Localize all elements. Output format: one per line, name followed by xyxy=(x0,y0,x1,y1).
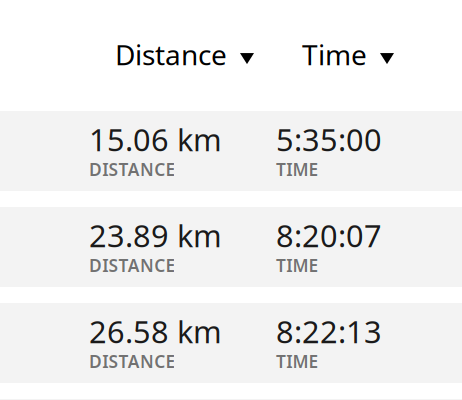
staticText: DISTANCE xyxy=(89,254,175,277)
staticText: Distance xyxy=(115,36,227,73)
button[interactable]: 26.58 km xyxy=(0,303,462,383)
staticText: TIME xyxy=(276,254,319,277)
button[interactable]: 15.06 km xyxy=(0,111,462,191)
staticText: DISTANCE xyxy=(89,158,175,181)
staticText: 8:22:13 xyxy=(276,311,382,352)
staticText: Time xyxy=(302,36,367,73)
button[interactable]: 23.89 km xyxy=(0,207,462,287)
staticText: TIME xyxy=(276,158,319,181)
staticText: 5:35:00 xyxy=(276,119,382,160)
staticText: 15.06 km xyxy=(89,119,222,160)
button[interactable]: Distance xyxy=(115,36,254,73)
button[interactable]: Time xyxy=(302,36,394,73)
staticText: 23.89 km xyxy=(89,215,222,256)
staticText: TIME xyxy=(276,350,319,373)
staticText: DISTANCE xyxy=(89,350,175,373)
staticText: 26.58 km xyxy=(89,311,222,352)
staticText: 8:20:07 xyxy=(276,215,382,256)
